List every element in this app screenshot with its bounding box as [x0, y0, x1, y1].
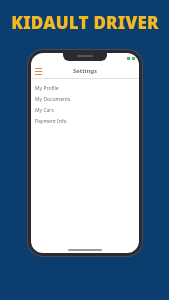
- button[interactable]: My Profile: [31, 83, 139, 94]
- button[interactable]: My Documents: [31, 94, 139, 105]
- staticText: My Documents: [35, 96, 71, 103]
- button[interactable]: Payment Info: [31, 116, 139, 127]
- staticText: Settings: [73, 67, 97, 75]
- staticText: Payment Info: [35, 118, 67, 125]
- button[interactable]: My Cars: [31, 105, 139, 116]
- staticText: My Cars: [35, 107, 54, 114]
- staticText: KIDAULT DRIVER: [11, 11, 159, 34]
- button[interactable]: Open navigation menu: [34, 67, 42, 75]
- staticText: My Profile: [35, 85, 59, 92]
